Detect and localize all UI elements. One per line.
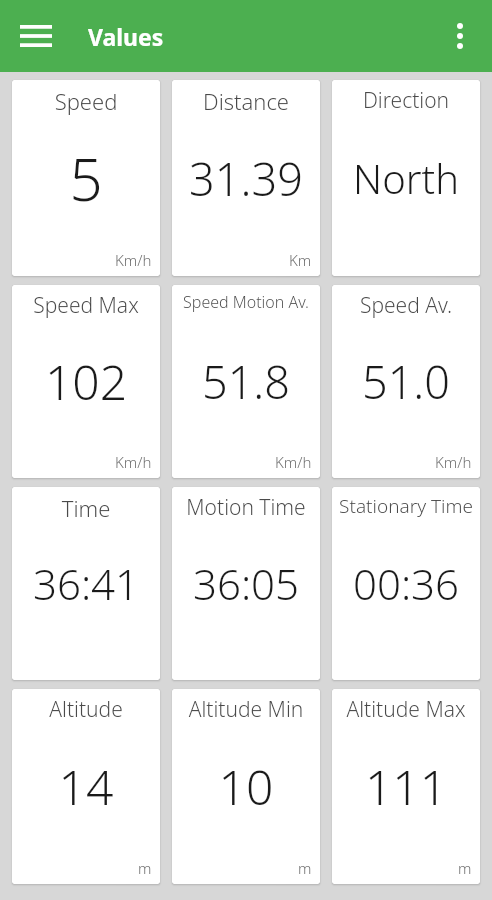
staticText: Speed Motion Av.	[174, 291, 318, 313]
button[interactable]: Direction	[332, 80, 480, 276]
staticText: Altitude Min	[174, 695, 318, 724]
staticText: Altitude Max	[334, 695, 478, 724]
button[interactable]: Motion Time	[172, 487, 320, 680]
button[interactable]: Speed Motion Av.	[172, 285, 320, 478]
staticText: Km/h	[435, 452, 472, 472]
button[interactable]: Speed Max	[12, 285, 160, 478]
button[interactable]: Speed	[12, 80, 160, 276]
button[interactable]: Time	[12, 487, 160, 680]
staticText: m	[298, 858, 312, 878]
button[interactable]: Open navigation menu	[10, 10, 62, 62]
button[interactable]: More options	[436, 12, 484, 60]
staticText: Altitude	[14, 695, 158, 724]
staticText: 51.8	[174, 351, 318, 412]
staticText: Speed Max	[14, 291, 158, 320]
staticText: 111	[334, 754, 478, 819]
button[interactable]: Altitude Max	[332, 689, 480, 884]
staticText: m	[458, 858, 472, 878]
staticText: Km/h	[115, 452, 152, 472]
staticText: Direction	[334, 86, 478, 115]
staticText: Values	[88, 21, 164, 52]
staticText: 00:36	[334, 555, 478, 612]
staticText: m	[138, 858, 152, 878]
staticText: Speed	[14, 86, 158, 116]
staticText: 31.39	[174, 148, 318, 209]
staticText: North	[334, 151, 478, 205]
button[interactable]: Altitude Min	[172, 689, 320, 884]
staticText: 36:41	[14, 555, 158, 612]
staticText: Distance	[174, 86, 318, 116]
staticText: Motion Time	[174, 493, 318, 522]
staticText: Km	[289, 250, 312, 270]
button[interactable]: Stationary Time	[332, 487, 480, 680]
staticText: Time	[14, 493, 158, 523]
staticText: 10	[174, 754, 318, 819]
staticText: 14	[14, 754, 158, 819]
button[interactable]: Distance	[172, 80, 320, 276]
staticText: Km/h	[115, 250, 152, 270]
staticText: 51.0	[334, 351, 478, 412]
staticText: Speed Av.	[334, 291, 478, 320]
button[interactable]: Altitude	[12, 689, 160, 884]
staticText: 5	[14, 139, 158, 218]
button[interactable]: Speed Av.	[332, 285, 480, 478]
staticText: Stationary Time	[334, 493, 478, 519]
staticText: 36:05	[174, 555, 318, 612]
staticText: Km/h	[275, 452, 312, 472]
staticText: 102	[14, 349, 158, 414]
